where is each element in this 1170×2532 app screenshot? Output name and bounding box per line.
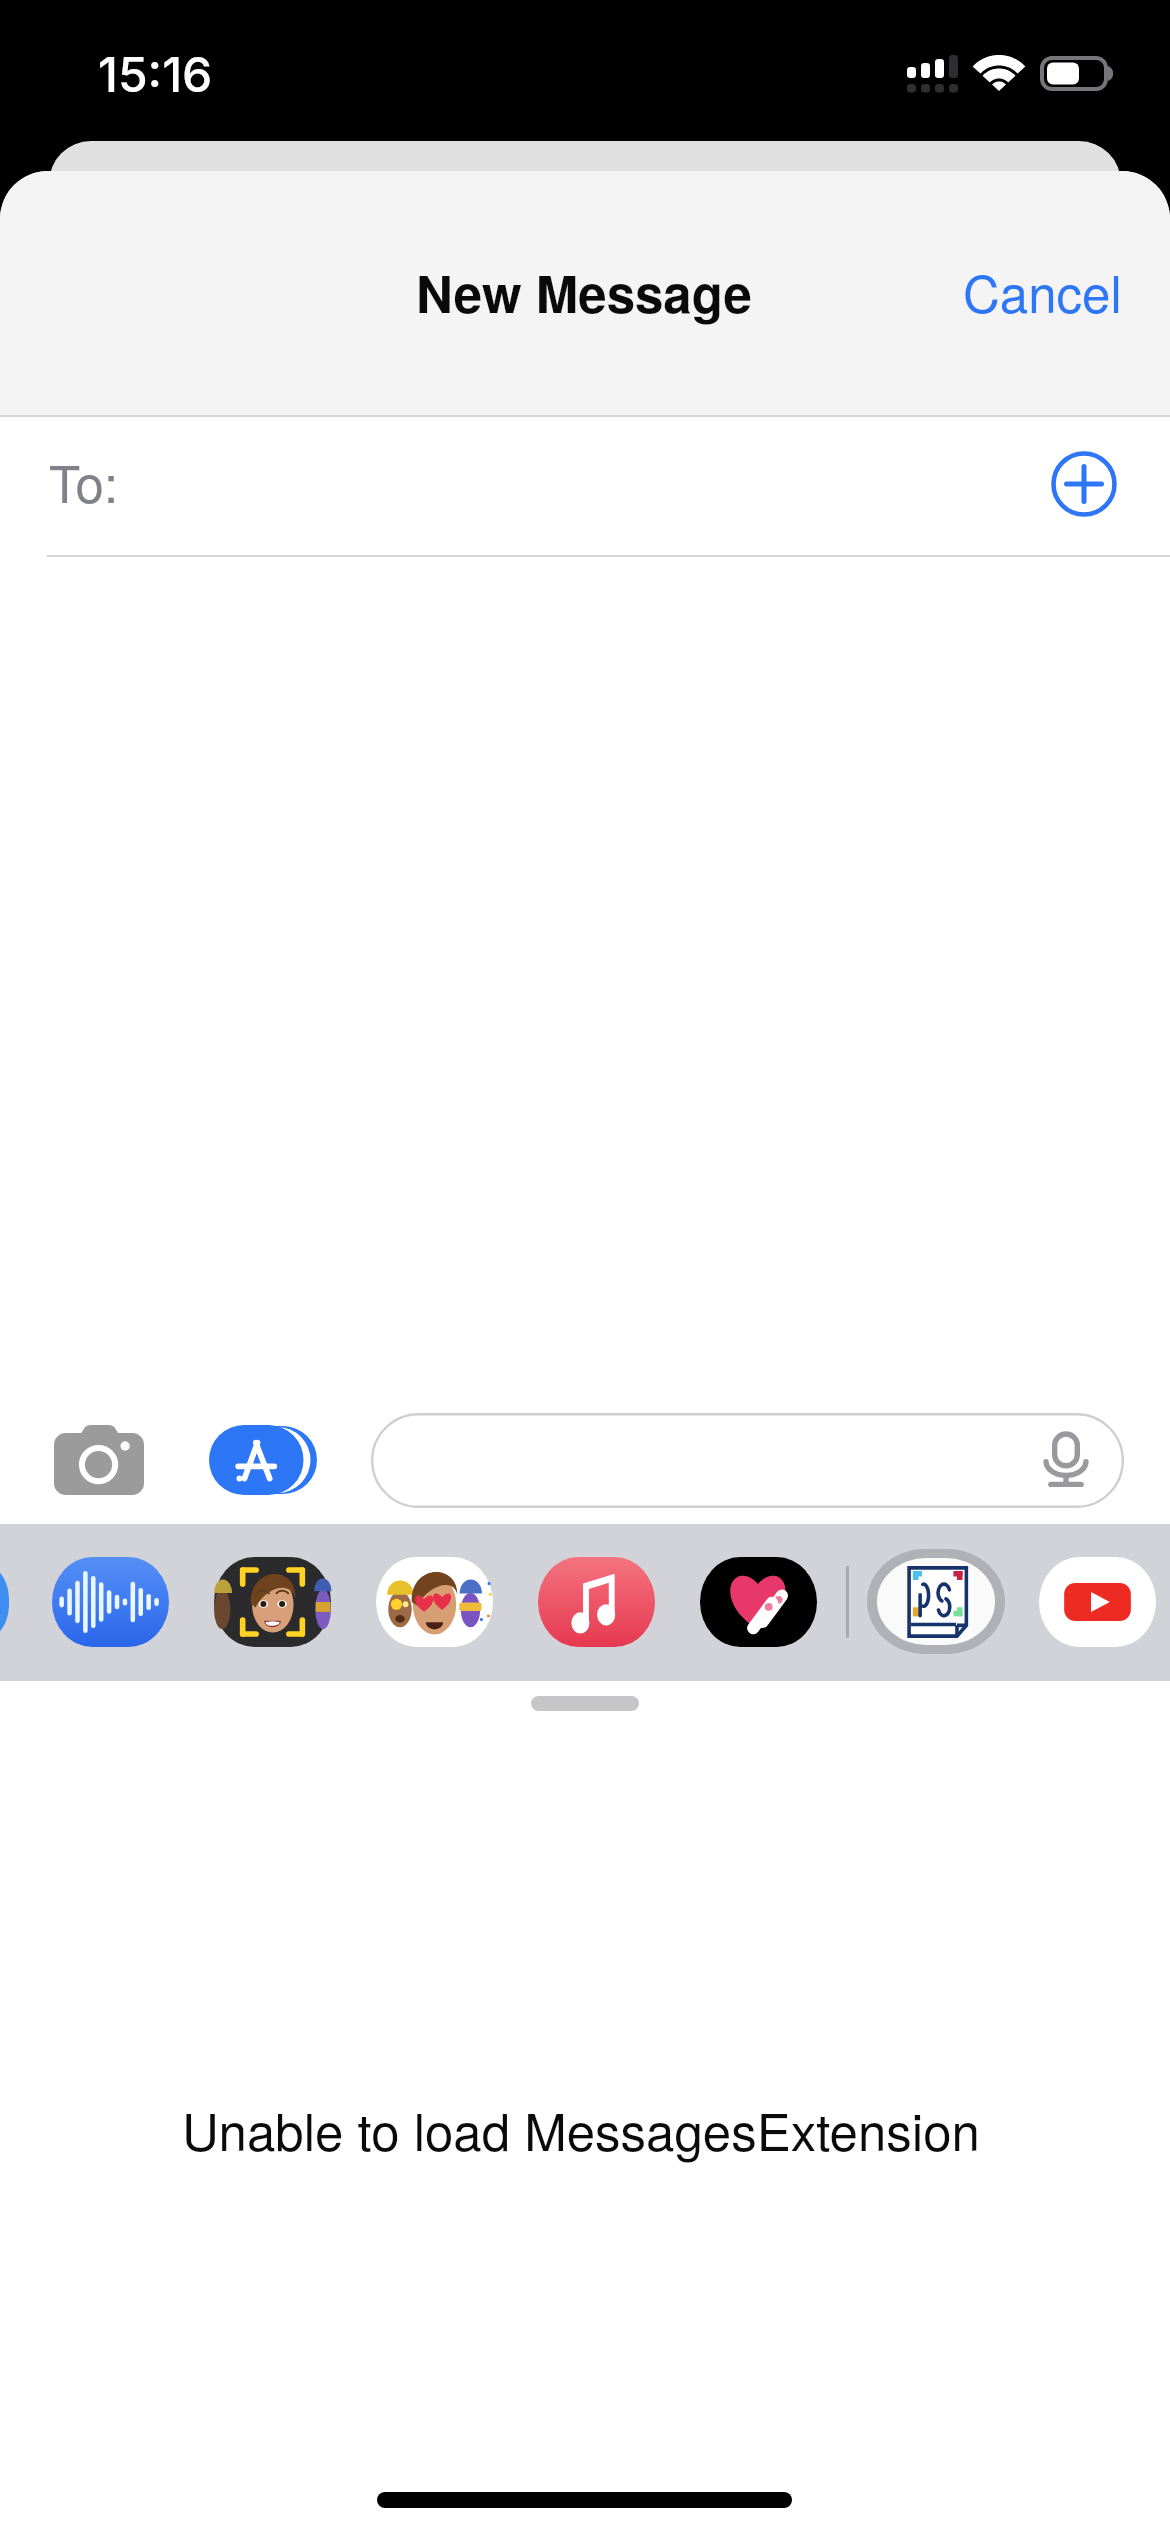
button[interactable] <box>0 1557 9 1647</box>
staticText: Unable to load MessagesExtension <box>182 2092 980 2165</box>
button[interactable] <box>371 1413 1124 1508</box>
staticText: To: <box>49 444 119 517</box>
button[interactable]: Add contact <box>1046 446 1122 522</box>
button[interactable]: Health <box>700 1557 817 1647</box>
button[interactable]: To: <box>0 417 1020 555</box>
button[interactable]: Voice memo <box>52 1557 169 1647</box>
staticText: 15:16 <box>98 45 213 103</box>
button[interactable]: Memoji stickers <box>376 1557 493 1647</box>
button[interactable]: Photoshop <box>867 1549 1005 1654</box>
button[interactable]: Apps <box>209 1425 317 1495</box>
button[interactable]: Cancel <box>933 229 1133 339</box>
button[interactable]: Music <box>538 1557 655 1647</box>
staticText: Cancel <box>963 254 1122 327</box>
button[interactable]: Memoji camera <box>214 1557 331 1647</box>
button[interactable]: Camera <box>54 1425 144 1495</box>
button[interactable]: YouTube <box>1039 1557 1156 1647</box>
staticText: New Message <box>416 256 752 329</box>
